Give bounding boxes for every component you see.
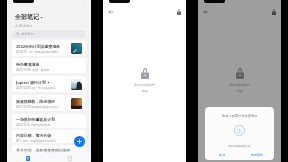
button[interactable]: Back bbox=[201, 7, 210, 16]
staticText: 内容已锁，需为升级 bbox=[16, 133, 52, 138]
staticText: 2022/1/1 这一年要去的地方和想… bbox=[16, 50, 60, 54]
button[interactable]: New note bbox=[74, 136, 85, 147]
staticText: 笔记已加密保护 bbox=[134, 83, 155, 87]
staticText: 2021/12/10 海边的日落真的太美了 bbox=[16, 105, 60, 109]
staticText: 2022年的计划及愿望清单 bbox=[16, 44, 60, 49]
staticText: 共 38 条笔记 bbox=[15, 24, 32, 28]
staticText: 使用人脸ID打开加密笔记 bbox=[222, 114, 258, 118]
button[interactable]: 一场美好的邂逅及计划 bbox=[12, 114, 86, 128]
staticText: 解锁 bbox=[142, 89, 148, 93]
staticText: 取消 bbox=[219, 153, 225, 157]
staticText: 2021/10/2 平凡中的小确幸 bbox=[16, 154, 51, 158]
staticText: W.1 这是一条被加密保护的笔记 bbox=[16, 139, 56, 143]
staticText: 笔记已加密保护 bbox=[229, 83, 250, 87]
staticText: 解锁 bbox=[237, 89, 243, 93]
button[interactable]: Jupiter 旅行计划 ☀ bbox=[12, 76, 86, 92]
staticText: 待办事项清单 bbox=[16, 62, 40, 67]
button[interactable]: Back bbox=[106, 7, 115, 16]
staticText: 搜索笔记 bbox=[21, 32, 34, 36]
staticText: 一场美好的邂逅及计划 bbox=[16, 117, 55, 122]
button[interactable]: 旅途很精彩，阳光很好 bbox=[12, 95, 86, 111]
button[interactable]: 使用密码 bbox=[239, 151, 274, 158]
staticText: 全部笔记 bbox=[15, 13, 39, 21]
staticText: 请面对屏幕解锁人脸 bbox=[228, 145, 251, 148]
staticText: 使用密码 bbox=[251, 153, 263, 157]
staticText: 2021/12/30 买菜、取快递 bbox=[16, 68, 50, 72]
button[interactable]: 搜索笔记 bbox=[12, 30, 86, 38]
button[interactable]: 2022年的计划及愿望清单 bbox=[12, 40, 86, 56]
staticText: 关于生活，还有很多值得记录的 bbox=[16, 148, 71, 153]
staticText: 2021/11/5 周末的美好时光 bbox=[16, 123, 51, 127]
button[interactable]: Lock bbox=[174, 7, 183, 16]
staticText: 2021/12/25 第一天 出发去海边 bbox=[16, 86, 56, 90]
button[interactable]: 待办事项清单 bbox=[12, 58, 86, 73]
button[interactable]: 内容已锁，需为升级 bbox=[12, 130, 86, 143]
button[interactable]: Lock bbox=[269, 7, 278, 16]
staticText: 旅途很精彩，阳光很好 bbox=[16, 99, 55, 104]
button[interactable]: Notes bbox=[7, 154, 49, 162]
staticText: Jupiter 旅行计划 ☀ bbox=[16, 80, 51, 85]
button[interactable]: 取消 bbox=[205, 151, 239, 158]
button[interactable]: To-do bbox=[49, 154, 91, 162]
button[interactable]: 关于生活，还有很多值得记录的 bbox=[12, 145, 86, 158]
